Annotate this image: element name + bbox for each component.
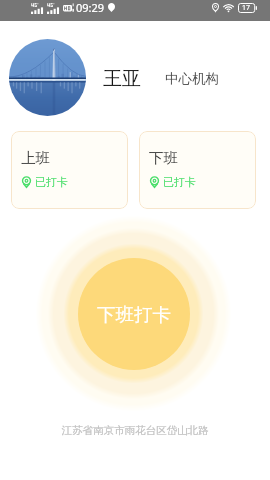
staticText: 09:29 — [76, 0, 105, 15]
staticText: 江苏省南京市雨花台区岱山北路 — [0, 424, 270, 437]
button[interactable]: 上班 — [11, 131, 128, 209]
staticText: 下班 — [149, 149, 178, 167]
staticText: 已打卡 — [163, 175, 196, 189]
staticText: 上班 — [21, 149, 50, 167]
button[interactable]: 下班 — [139, 131, 256, 209]
staticText: 中心机构 — [165, 70, 219, 87]
staticText: 已打卡 — [35, 175, 68, 189]
staticText: 下班打卡 — [97, 303, 171, 326]
staticText: 17 — [242, 3, 251, 13]
button[interactable]: Profile photo — [9, 39, 86, 116]
button[interactable]: 下班打卡 — [78, 258, 190, 370]
staticText: 王亚 — [103, 67, 141, 91]
